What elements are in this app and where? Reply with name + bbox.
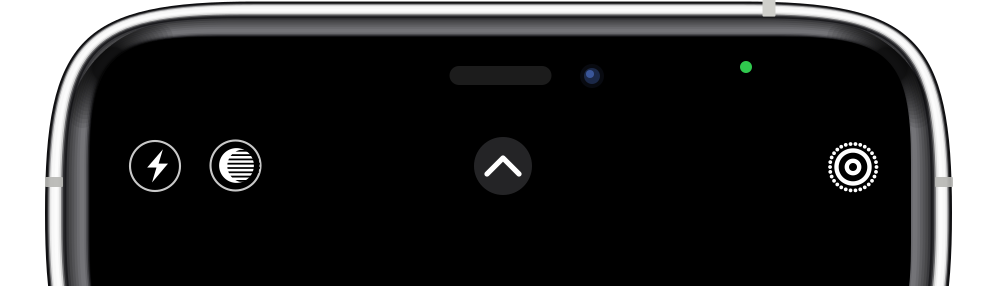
button[interactable]: More camera controls <box>474 137 532 195</box>
button[interactable]: Live Photo <box>826 140 880 194</box>
button[interactable]: Flash <box>130 141 180 191</box>
button[interactable]: Photographic styles <box>210 140 260 190</box>
